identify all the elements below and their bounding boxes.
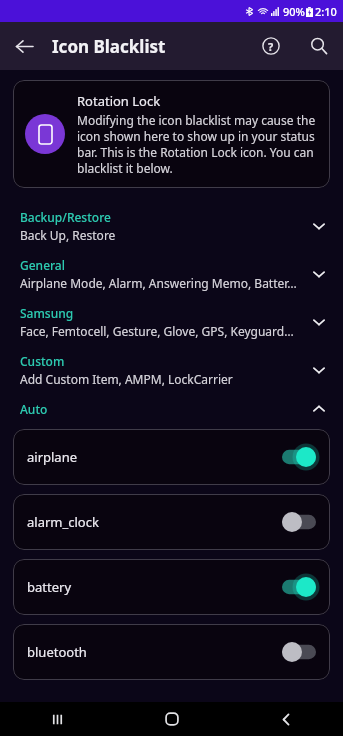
- button[interactable]: Auto: [0, 394, 343, 424]
- staticText: 90%: [283, 4, 305, 19]
- button[interactable]: Samsung: [0, 298, 343, 346]
- button[interactable]: bluetooth: [13, 624, 330, 680]
- staticText: battery: [27, 578, 282, 596]
- staticText: Backup/Restore: [20, 209, 111, 225]
- button[interactable]: airplane: [13, 429, 330, 485]
- button[interactable]: Help: [247, 22, 295, 70]
- button[interactable]: Back: [0, 22, 48, 70]
- staticText: Airplane Mode, Alarm, Answering Memo, Ba…: [20, 275, 297, 291]
- button[interactable]: Search: [295, 22, 343, 70]
- staticText: airplane: [27, 448, 282, 466]
- button[interactable]: General: [0, 250, 343, 298]
- staticText: Face, Femtocell, Gesture, Glove, GPS, Ke…: [20, 323, 294, 339]
- staticText: Add Custom Item, AMPM, LockCarrier: [20, 371, 233, 387]
- staticText: Custom: [20, 353, 65, 369]
- button[interactable]: Recents: [0, 702, 115, 736]
- button[interactable]: alarm_clock: [13, 494, 330, 550]
- button[interactable]: Home: [115, 702, 229, 736]
- staticText: Rotation Lock: [77, 92, 161, 110]
- staticText: Auto: [20, 401, 48, 417]
- button[interactable]: Rotation Lock: [13, 80, 330, 188]
- staticText: bluetooth: [27, 643, 282, 661]
- button[interactable]: battery: [13, 559, 330, 615]
- staticText: ?: [268, 39, 274, 54]
- staticText: Modifying the icon blacklist may cause t…: [77, 112, 318, 176]
- button[interactable]: Backup/Restore: [0, 202, 343, 250]
- staticText: 2:10: [315, 4, 337, 19]
- button[interactable]: Back: [229, 702, 343, 736]
- staticText: alarm_clock: [27, 513, 282, 531]
- button[interactable]: Custom: [0, 346, 343, 394]
- staticText: Samsung: [20, 305, 74, 321]
- staticText: Icon Blacklist: [52, 35, 166, 58]
- staticText: Back Up, Restore: [20, 227, 116, 243]
- staticText: General: [20, 257, 65, 273]
